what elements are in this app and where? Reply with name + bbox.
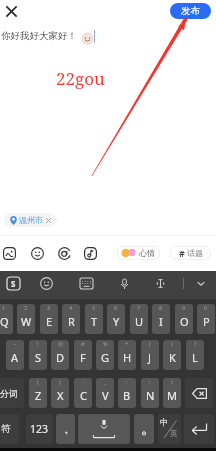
staticText: X — [57, 388, 64, 403]
button[interactable]: ~ — [6, 340, 24, 370]
staticText: 温州市 — [19, 215, 43, 225]
staticText: Q — [0, 314, 9, 329]
button[interactable]: Input method — [7, 277, 20, 290]
button[interactable]: 0 — [197, 304, 215, 334]
staticText: ) — [171, 340, 173, 347]
button[interactable]: 中 — [158, 414, 181, 444]
button[interactable]: % — [96, 340, 114, 370]
staticText: _ — [104, 378, 107, 385]
staticText: E — [46, 314, 53, 329]
staticText: - — [82, 378, 84, 385]
button[interactable]: ( — [141, 340, 159, 370]
button[interactable]: 1 — [0, 304, 13, 334]
staticText: U — [135, 314, 144, 329]
button[interactable]: 5 — [85, 304, 103, 334]
staticText: ( — [37, 378, 39, 385]
staticText: ( — [149, 340, 151, 347]
staticText: O — [180, 314, 189, 329]
button[interactable]: 6 — [107, 304, 125, 334]
staticText: ) — [59, 378, 61, 385]
staticText: A — [11, 350, 19, 365]
staticText: 9 — [182, 304, 186, 311]
staticText: 0 — [204, 304, 208, 311]
button[interactable]: : — [118, 378, 136, 408]
button[interactable]: 符 — [0, 414, 19, 444]
button[interactable]: 9 — [175, 304, 193, 334]
staticText: 符 — [1, 423, 11, 435]
button[interactable]: Emoji — [40, 277, 53, 290]
button[interactable]: Keyboard layout — [80, 278, 93, 289]
staticText: ? — [194, 340, 197, 347]
staticText: S — [11, 278, 16, 289]
staticText: : — [126, 378, 128, 385]
button[interactable] — [56, 414, 75, 444]
button[interactable]: 4 — [62, 304, 80, 334]
staticText: H — [123, 350, 132, 365]
staticText: 英 — [170, 429, 178, 438]
staticText: N — [146, 388, 155, 403]
button[interactable]: ; — [141, 378, 159, 408]
staticText: ~ — [13, 340, 17, 347]
button[interactable]: 8 — [152, 304, 170, 334]
button[interactable]: _ — [96, 378, 114, 408]
staticText: 3 — [47, 304, 51, 311]
button[interactable]: 7 — [130, 304, 148, 334]
button[interactable]: / — [163, 378, 181, 408]
button[interactable]: 3 — [40, 304, 58, 334]
button[interactable]: ! — [29, 340, 47, 370]
button[interactable]: Voice input — [118, 277, 131, 290]
button[interactable]: 123 — [26, 414, 53, 444]
button[interactable]: # — [170, 246, 211, 260]
button[interactable]: Tool — [3, 247, 16, 260]
button[interactable]: ) — [51, 378, 69, 408]
button[interactable] — [78, 414, 130, 444]
staticText: 心情 — [139, 248, 155, 258]
staticText: @ — [58, 340, 63, 347]
button[interactable]: Close — [0, 0, 22, 22]
staticText: 6 — [114, 304, 118, 311]
staticText: B — [123, 388, 131, 403]
staticText: 5 — [92, 304, 96, 311]
staticText: / — [171, 378, 174, 385]
button[interactable]: ) — [163, 340, 181, 370]
staticText: 1 — [2, 304, 6, 311]
button[interactable]: 心情 — [117, 246, 160, 260]
button[interactable]: 温州市 — [4, 213, 57, 227]
button[interactable]: Move cursor — [154, 278, 167, 289]
button[interactable]: 发布 — [170, 3, 211, 19]
button[interactable]: @ — [51, 340, 69, 370]
button[interactable]: * — [118, 340, 136, 370]
staticText: 你好我好大家好！ — [1, 30, 77, 42]
staticText: # — [81, 340, 85, 347]
button[interactable]: Tool — [31, 247, 44, 260]
staticText: V — [102, 388, 109, 403]
staticText: 8 — [159, 304, 163, 311]
staticText: 分词 — [0, 388, 18, 399]
staticText: T — [91, 314, 98, 329]
button[interactable]: 分词 — [0, 378, 24, 408]
staticText: Y — [113, 314, 120, 329]
button[interactable]: ? — [186, 340, 204, 370]
staticText: 2 — [24, 304, 28, 311]
staticText: % — [103, 340, 108, 347]
staticText: G — [101, 350, 110, 365]
button[interactable] — [184, 414, 214, 444]
button[interactable]: Hide keyboard — [195, 278, 207, 289]
staticText: W — [21, 314, 32, 329]
staticText: P — [203, 314, 210, 329]
staticText: ; — [149, 378, 151, 385]
button[interactable] — [134, 414, 154, 444]
button[interactable]: 2 — [17, 304, 35, 334]
button[interactable]: Tool — [84, 247, 97, 260]
staticText: ! — [37, 340, 39, 347]
staticText: I — [159, 314, 163, 329]
staticText: 22gou — [56, 67, 105, 90]
staticText: S — [35, 350, 42, 365]
staticText: 话题 — [187, 248, 203, 258]
button[interactable]: - — [74, 378, 92, 408]
button[interactable]: Tool — [58, 247, 71, 260]
button[interactable] — [185, 378, 213, 408]
button[interactable]: # — [74, 340, 92, 370]
button[interactable]: ( — [29, 378, 47, 408]
staticText: 4 — [69, 304, 73, 311]
